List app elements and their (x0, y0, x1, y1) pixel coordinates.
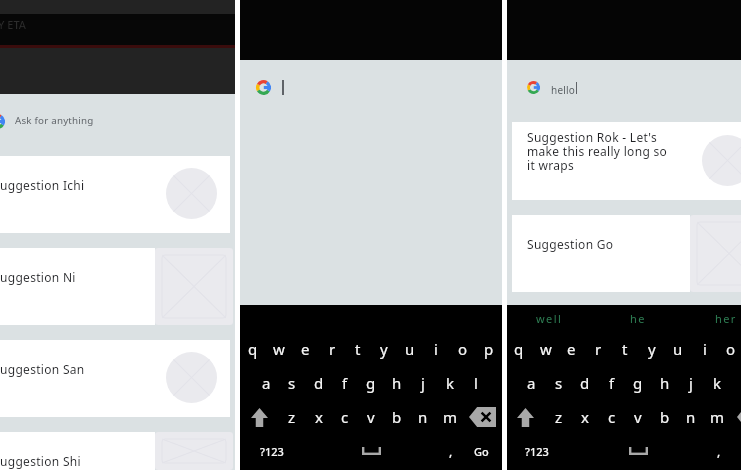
button[interactable]: d (571, 366, 598, 400)
button[interactable]: z (545, 400, 572, 434)
button[interactable]: j (677, 366, 704, 400)
staticText: u (405, 339, 415, 359)
button[interactable]: t (611, 332, 638, 366)
button[interactable]: h (651, 366, 678, 400)
button[interactable]: c (598, 400, 625, 434)
button[interactable]: hello (527, 72, 741, 102)
button[interactable]: d (306, 366, 332, 400)
button[interactable]: i (423, 332, 449, 366)
button[interactable]: Suggestion Rok - Let's make this really … (512, 122, 741, 200)
button[interactable]: m (704, 400, 731, 434)
staticText: Go (474, 444, 489, 459)
button[interactable]: , (705, 435, 732, 467)
button[interactable]: n (410, 400, 436, 434)
button[interactable]: q (240, 332, 266, 366)
button[interactable]: r (585, 332, 612, 366)
button[interactable]: t (345, 332, 371, 366)
button[interactable]: Shift (507, 401, 545, 433)
staticText: Suggestion Go (527, 236, 614, 252)
button[interactable]: well (507, 305, 594, 331)
button[interactable]: w (532, 332, 559, 366)
button[interactable]: ?123 (517, 435, 557, 467)
button[interactable]: y (371, 332, 397, 366)
staticText: well (536, 311, 563, 326)
button[interactable]: b (651, 400, 678, 434)
button[interactable]: i (691, 332, 718, 366)
button[interactable]: q (507, 332, 532, 366)
staticText: Y ETA (0, 17, 27, 32)
button[interactable]: uggestion Ni (0, 248, 235, 325)
staticText: hello (551, 83, 576, 97)
button[interactable]: g (624, 366, 651, 400)
button[interactable]: s (279, 366, 305, 400)
button[interactable]: w (266, 332, 292, 366)
button[interactable]: z (279, 400, 305, 434)
staticText: Ask for anything (15, 114, 94, 127)
staticText: a (262, 373, 271, 393)
button[interactable]: Shift (240, 401, 279, 433)
button[interactable]: e (558, 332, 585, 366)
button[interactable]: c (332, 400, 358, 434)
button[interactable]: m (437, 400, 463, 434)
button[interactable]: Backspace (730, 401, 741, 433)
button[interactable]: n (677, 400, 704, 434)
button[interactable]: s (545, 366, 572, 400)
button[interactable]: p (476, 332, 502, 366)
button[interactable]: r (319, 332, 345, 366)
staticText: uggestion Shi (0, 453, 81, 469)
button[interactable]: Suggestion Go (512, 215, 741, 292)
staticText: her (715, 311, 737, 326)
button[interactable]: , (438, 435, 464, 467)
button[interactable]: Go (462, 435, 501, 467)
button[interactable]: a (253, 366, 279, 400)
button[interactable]: x (571, 400, 598, 434)
button[interactable]: h (384, 366, 410, 400)
button[interactable]: Space (585, 435, 691, 467)
button[interactable]: e (292, 332, 318, 366)
button[interactable]: o (717, 332, 741, 366)
button[interactable]: f (332, 366, 358, 400)
button[interactable]: g (358, 366, 384, 400)
button[interactable]: a (518, 366, 545, 400)
button[interactable]: Backspace (463, 401, 502, 433)
button[interactable]: uggestion Shi (0, 432, 235, 470)
button[interactable]: j (410, 366, 436, 400)
staticText: j (421, 373, 425, 393)
button[interactable]: Space (319, 435, 424, 467)
button[interactable]: ?123 (252, 435, 291, 467)
staticText: c (341, 407, 349, 427)
button[interactable]: u (664, 332, 691, 366)
staticText: z (288, 407, 296, 427)
button[interactable]: uggestion Ichi (0, 156, 235, 233)
button[interactable]: v (358, 400, 384, 434)
staticText: f (609, 373, 615, 393)
staticText: c (608, 407, 616, 427)
button[interactable]: x (306, 400, 332, 434)
button[interactable]: b (384, 400, 410, 434)
button[interactable]: v (624, 400, 651, 434)
button[interactable]: l (463, 366, 489, 400)
button[interactable]: her (682, 305, 741, 331)
button[interactable]: k (704, 366, 731, 400)
staticText: u (673, 339, 683, 359)
staticText: he (630, 311, 646, 326)
button[interactable]: Ask for anything (0, 100, 235, 142)
staticText: l (474, 373, 478, 393)
button[interactable]: y (638, 332, 665, 366)
button[interactable]: he (594, 305, 682, 331)
button[interactable]: u (397, 332, 423, 366)
button[interactable] (256, 72, 502, 102)
staticText: s (555, 373, 563, 393)
staticText: d (314, 373, 324, 393)
staticText: y (380, 339, 388, 359)
button[interactable]: f (598, 366, 625, 400)
button[interactable]: uggestion San (0, 340, 235, 417)
staticText: v (634, 407, 642, 427)
staticText: p (484, 339, 494, 359)
staticText: o (458, 339, 468, 359)
button[interactable]: o (450, 332, 476, 366)
button[interactable]: k (437, 366, 463, 400)
staticText: m (443, 407, 458, 427)
